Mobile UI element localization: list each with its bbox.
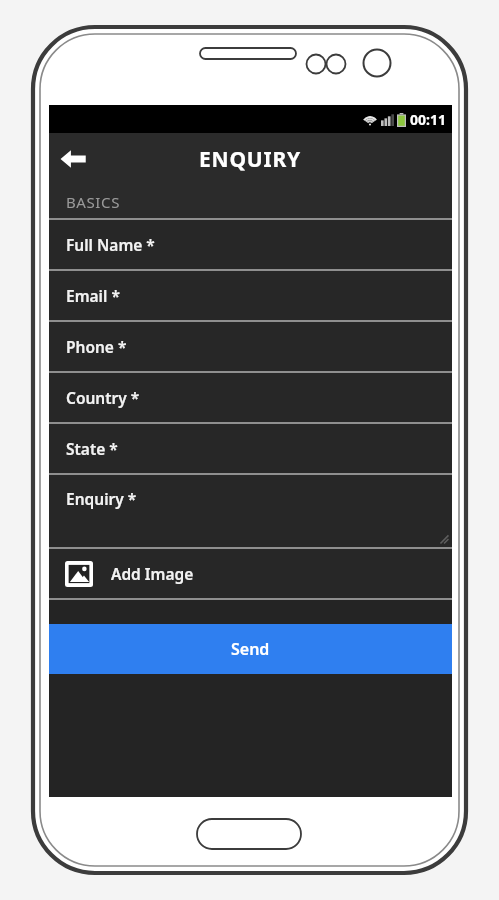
staticText: Add Image bbox=[111, 563, 194, 584]
button[interactable]: Email * bbox=[49, 271, 452, 320]
staticText: Email * bbox=[66, 285, 120, 306]
button[interactable]: Full Name * bbox=[49, 220, 452, 269]
staticText: Country * bbox=[66, 387, 140, 408]
staticText: ENQUIRY bbox=[199, 145, 302, 174]
staticText: Send bbox=[231, 638, 270, 660]
staticText: BASICS bbox=[66, 192, 120, 212]
button[interactable]: Back bbox=[49, 135, 97, 183]
button[interactable]: State * bbox=[49, 424, 452, 473]
button[interactable]: Country * bbox=[49, 373, 452, 422]
staticText: State * bbox=[66, 438, 118, 459]
button[interactable]: Add Image bbox=[49, 549, 452, 598]
button[interactable]: Enquiry * bbox=[49, 475, 452, 547]
button[interactable]: Send bbox=[49, 624, 452, 674]
staticText: Phone * bbox=[66, 336, 127, 357]
staticText: Enquiry * bbox=[66, 488, 137, 509]
button[interactable]: Phone * bbox=[49, 322, 452, 371]
staticText: 00:11 bbox=[410, 110, 446, 129]
staticText: Full Name * bbox=[66, 234, 155, 255]
